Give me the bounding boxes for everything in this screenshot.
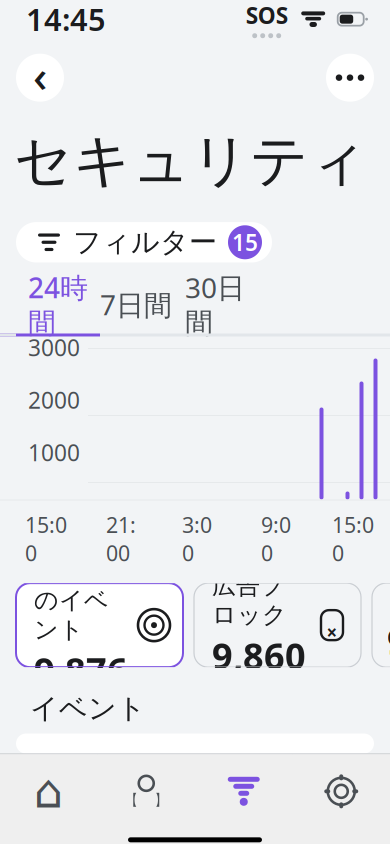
staticText: 9,876	[34, 646, 128, 694]
staticText: 21:00	[106, 510, 136, 567]
staticText: 9	[387, 617, 390, 665]
button[interactable]: その他のオプション	[326, 54, 374, 102]
staticText: すべてのイベント	[34, 556, 109, 644]
staticText: イベント	[30, 691, 146, 725]
button[interactable]: ホーム	[0, 754, 97, 828]
staticText: 15	[232, 227, 258, 257]
staticText: 9:00	[261, 510, 291, 567]
staticText: セキュリティ	[14, 126, 368, 196]
staticText: フィルター	[73, 225, 217, 259]
staticText: ⌂	[34, 765, 64, 818]
button[interactable]: 30日間	[172, 286, 258, 322]
button[interactable]: ネットワーク	[195, 754, 292, 828]
button[interactable]: 24時間	[16, 286, 100, 322]
button[interactable]: プロフィール	[97, 754, 195, 828]
button[interactable]: 設定	[292, 754, 390, 828]
button[interactable]: すべてのイベント	[16, 583, 183, 667]
button[interactable]: 広告ブロック	[194, 583, 361, 667]
staticText: 24時間	[28, 269, 88, 340]
button[interactable]: 戻る	[16, 54, 64, 102]
staticText: 9,860	[212, 632, 306, 679]
staticText: 30日間	[185, 269, 245, 340]
button[interactable]: ト	[372, 583, 390, 667]
staticText: 広告ブロック	[212, 571, 287, 630]
staticText: 7日間	[100, 286, 172, 323]
staticText: ‹	[33, 46, 47, 104]
staticText: ×	[326, 620, 337, 644]
staticText: SOS	[246, 0, 288, 30]
staticText: 3000	[28, 332, 80, 362]
staticText: 2000	[28, 385, 80, 415]
staticText: 3:00	[182, 510, 212, 567]
button[interactable]: フィルター	[16, 222, 272, 262]
staticText: 14:45	[26, 0, 106, 39]
staticText: 15:00	[332, 510, 374, 567]
staticText: 15:00	[25, 510, 67, 567]
button[interactable]: 7日間	[100, 286, 172, 322]
staticText: 1000	[28, 437, 80, 467]
